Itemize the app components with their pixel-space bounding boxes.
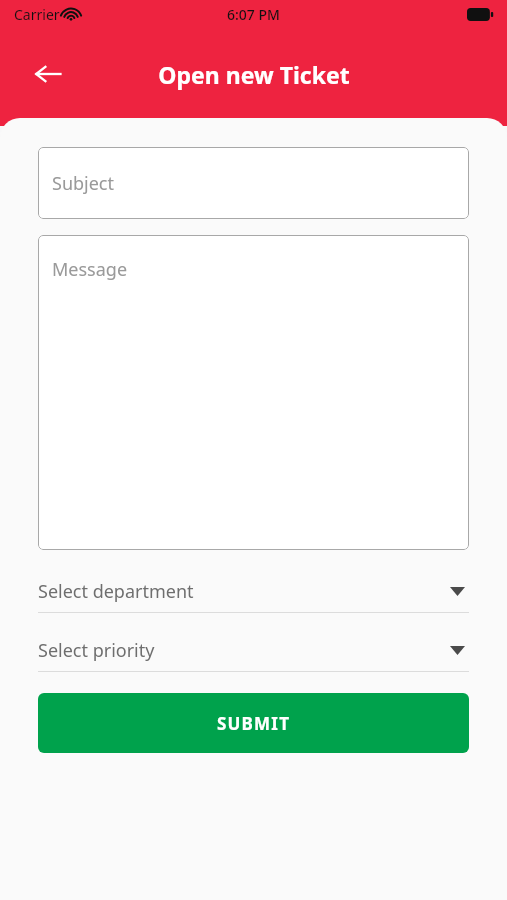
button[interactable]: Select department — [38, 571, 469, 613]
button[interactable]: SUBMIT — [38, 693, 469, 753]
button[interactable]: Select priority — [38, 630, 469, 672]
button[interactable]: Message — [38, 235, 469, 550]
staticText: Select department — [38, 579, 450, 604]
staticText: Select priority — [38, 638, 450, 663]
button[interactable]: Subject — [38, 147, 469, 219]
staticText: Subject — [52, 171, 115, 196]
staticText: SUBMIT — [217, 712, 291, 735]
button[interactable]: Back — [24, 50, 72, 98]
staticText: Open new Ticket — [158, 59, 350, 90]
staticText: Message — [52, 257, 128, 282]
staticText: 6:07 PM — [227, 5, 280, 24]
staticText: Carrier — [14, 5, 60, 24]
